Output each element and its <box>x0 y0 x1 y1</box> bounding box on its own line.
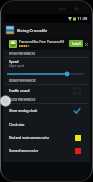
staticText: Password Box Free: Password M <box>19 40 65 44</box>
staticText: Second arrow color <box>9 149 75 153</box>
staticText: Speed <box>9 60 19 64</box>
staticText: 11:38 <box>77 16 88 21</box>
staticText: Bicing Crocodile <box>17 28 48 33</box>
button[interactable]: Dial and main arrows color <box>3 131 90 144</box>
staticText: Adjust speed <box>9 65 25 68</box>
button[interactable]: Second arrow color <box>3 144 90 157</box>
staticText: Enable sound <box>9 89 74 93</box>
staticText: SOUND PREFERENCES <box>9 79 36 83</box>
button[interactable]: Install <box>69 40 83 47</box>
button[interactable]: Enable sound <box>3 85 90 97</box>
staticText: Dial and main arrows color <box>9 136 75 140</box>
staticText: Clock size <box>9 123 25 127</box>
button[interactable]: Clock size <box>3 118 90 131</box>
button[interactable]: Password Box Free: Password M <box>3 37 90 50</box>
button[interactable]: Speed <box>3 58 90 70</box>
button[interactable]: Bicing Crocodile <box>3 23 90 37</box>
staticText: SPEED PREFERENCES <box>9 52 35 56</box>
staticText: Install <box>72 42 81 46</box>
button[interactable]: Show analog clock <box>3 104 90 118</box>
staticText: Show analog clock <box>9 109 74 113</box>
button[interactable]: Close advertisement <box>84 42 88 46</box>
staticText: CLOCK PREFERENCES <box>9 98 36 102</box>
